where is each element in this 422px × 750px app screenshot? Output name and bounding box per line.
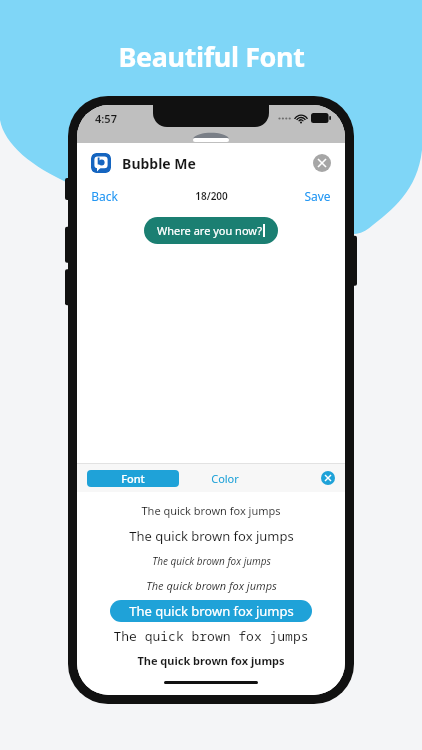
staticText: Bubble Me bbox=[122, 154, 196, 173]
button[interactable]: The quick brown fox jumps bbox=[77, 598, 345, 623]
staticText: The quick brown fox jumps bbox=[129, 527, 294, 545]
button[interactable]: Save bbox=[304, 188, 331, 204]
staticText: Font bbox=[121, 471, 145, 486]
staticText: Beautiful Font bbox=[118, 38, 305, 75]
staticText: Color bbox=[211, 471, 239, 486]
staticText: The quick brown fox jumps bbox=[141, 503, 281, 518]
button[interactable]: The quick brown fox jumps bbox=[77, 648, 345, 673]
button[interactable]: The quick brown fox jumps bbox=[77, 573, 345, 598]
staticText: The quick brown fox jumps bbox=[137, 653, 285, 668]
staticText: Where are you now? bbox=[157, 223, 262, 238]
button[interactable]: The quick brown fox jumps bbox=[77, 498, 345, 523]
button[interactable]: Close bbox=[313, 154, 331, 172]
staticText: The quick brown fox jumps bbox=[113, 627, 309, 645]
button[interactable]: Back bbox=[91, 188, 118, 204]
staticText: The quick brown fox jumps bbox=[129, 602, 294, 620]
button[interactable]: Color bbox=[179, 470, 271, 487]
button[interactable]: The quick brown fox jumps bbox=[77, 623, 345, 648]
staticText: Back bbox=[91, 188, 118, 204]
staticText: The quick brown fox jumps bbox=[152, 554, 271, 568]
button[interactable]: Close panel bbox=[321, 471, 335, 485]
button[interactable]: Where are you now? bbox=[144, 217, 278, 244]
button[interactable]: The quick brown fox jumps bbox=[77, 548, 345, 573]
staticText: Save bbox=[304, 188, 331, 204]
staticText: 4:57 bbox=[95, 111, 117, 126]
button[interactable]: Font bbox=[87, 470, 179, 487]
staticText: The quick brown fox jumps bbox=[146, 578, 277, 593]
button[interactable]: The quick brown fox jumps bbox=[77, 523, 345, 548]
staticText: 18/200 bbox=[195, 189, 228, 203]
